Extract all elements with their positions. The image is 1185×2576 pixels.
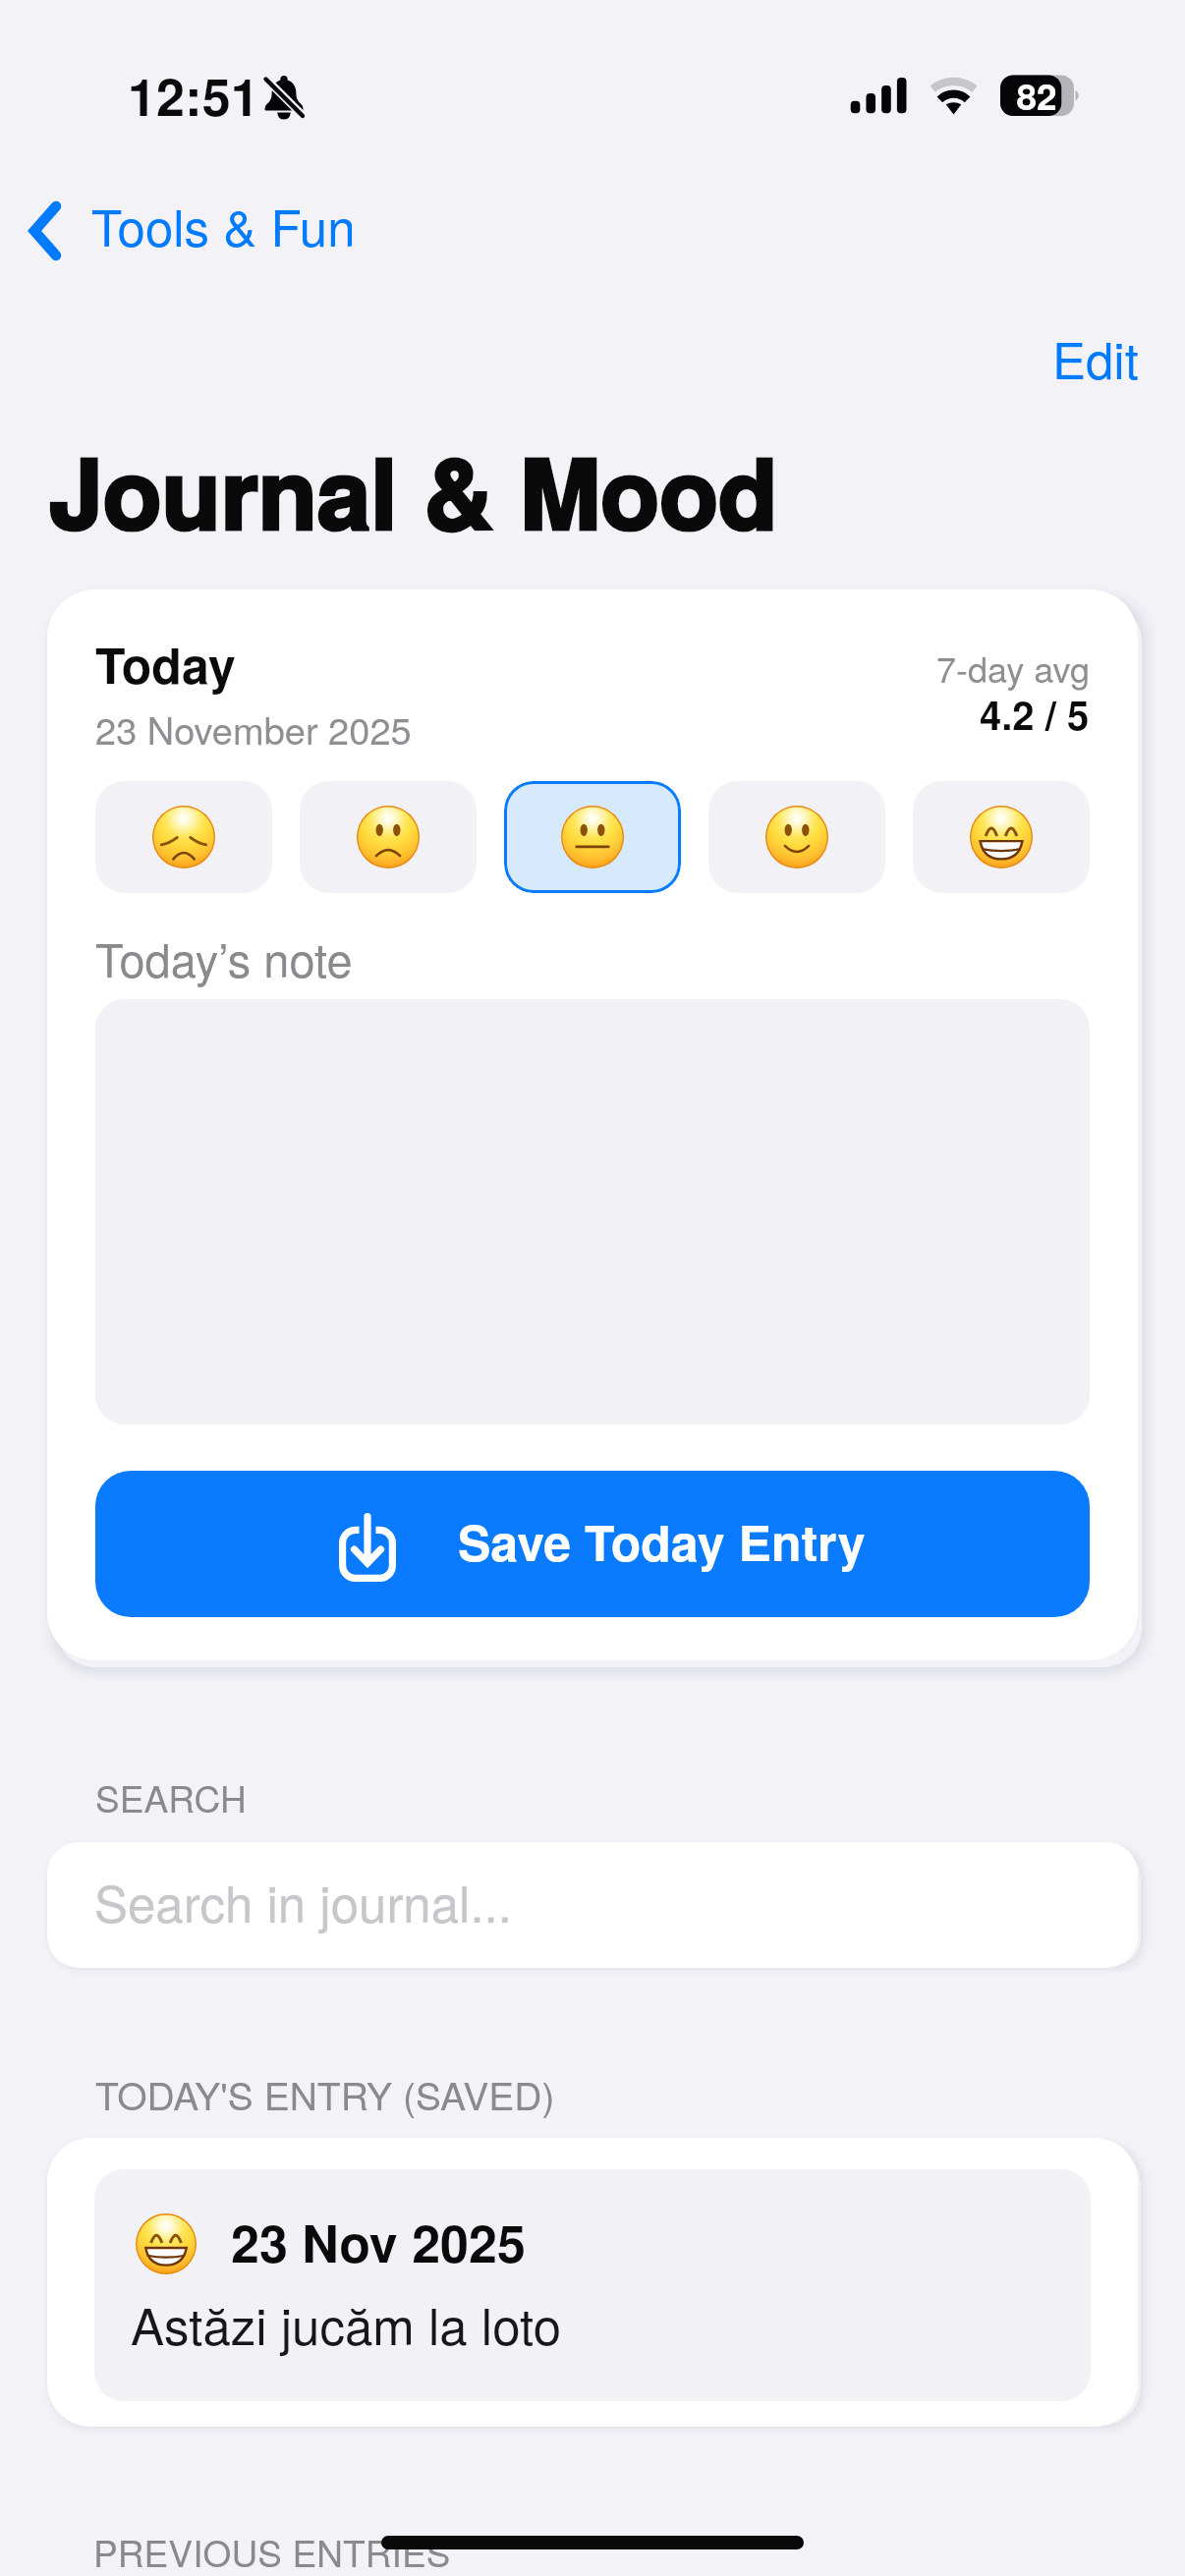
button[interactable]: Mood level 2 [300,781,477,893]
staticText: Today [95,629,236,700]
button[interactable]: Mood level 5 [913,781,1090,893]
staticText: Edit [1052,321,1139,393]
staticText: Tools & Fun [91,189,356,260]
button[interactable]: Mood level 4 [708,781,885,893]
staticText: 12:51 [128,58,259,131]
button[interactable]: Mood level 1 [95,781,272,893]
button[interactable]: 23 Nov 2025 [94,2169,1091,2401]
staticText: Today’s note [95,924,353,990]
staticText: 7-day avg [936,643,1090,694]
staticText: Search in journal... [94,1865,512,1936]
staticText: 4.2 / 5 [980,686,1090,742]
staticText: 82 [1006,69,1067,121]
staticText: PREVIOUS ENTRIES [93,2526,451,2576]
staticText: 23 November 2025 [95,701,412,755]
staticText: Save Today Entry [458,1506,866,1577]
staticText: TODAY'S ENTRY (SAVED) [95,2066,555,2121]
button[interactable]: Tools & Fun [22,187,364,274]
button[interactable]: Mood level 3 [504,781,681,893]
staticText: Astăzi jucăm la loto [131,2287,562,2359]
button[interactable]: Search in journal... [47,1842,1138,1968]
button[interactable]: Save Today Entry [95,1471,1090,1617]
button[interactable]: Edit [1033,309,1158,405]
staticText: Journal & Mood [49,420,778,560]
staticText: SEARCH [95,1771,247,1823]
staticText: 23 Nov 2025 [231,2205,526,2277]
